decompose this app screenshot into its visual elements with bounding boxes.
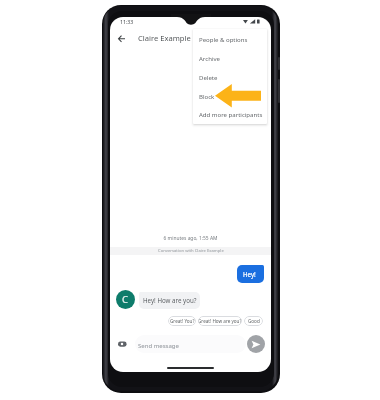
staticText: 6 minutes ago, 1:55 AM	[110, 235, 271, 242]
staticText: 11:33	[120, 18, 134, 25]
button[interactable]: Great! You?	[168, 316, 196, 326]
button[interactable]: Great! How are you?	[198, 316, 242, 326]
staticText: C	[122, 293, 129, 306]
staticText: Good	[248, 318, 260, 324]
button[interactable]: Send	[247, 335, 265, 353]
staticText: Claire Example	[138, 33, 191, 43]
button[interactable]: Hey! How are you?	[139, 292, 200, 309]
button[interactable]: Block	[193, 87, 267, 106]
button[interactable]: Add media	[114, 336, 130, 352]
button[interactable]: People & options	[193, 30, 267, 49]
staticText: People & options	[199, 36, 248, 44]
button[interactable]: Good	[244, 316, 263, 326]
staticText: Delete	[199, 74, 218, 82]
button[interactable]: Back	[111, 29, 131, 49]
staticText: Conversation with Claire Example	[158, 248, 224, 254]
staticText: Add more participants	[199, 111, 263, 119]
staticText: Hey!	[243, 270, 256, 278]
staticText: Great! You?	[170, 318, 195, 324]
staticText: Block	[199, 93, 215, 101]
button[interactable]: Hey!	[237, 265, 264, 283]
button[interactable]	[135, 335, 246, 353]
staticText: Send message	[138, 342, 179, 350]
button[interactable]: Add more participants	[193, 106, 267, 123]
staticText: Hey! How are you?	[143, 296, 197, 304]
button[interactable]: Delete	[193, 68, 267, 87]
staticText: Archive	[199, 55, 220, 63]
staticText: Great! How are you?	[198, 318, 242, 324]
button[interactable]: Archive	[193, 49, 267, 68]
